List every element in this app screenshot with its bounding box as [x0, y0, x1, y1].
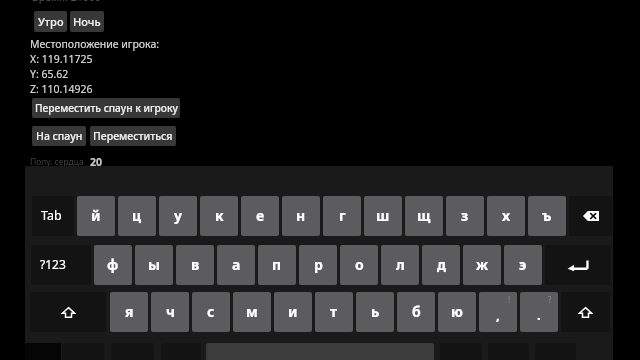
button[interactable]: э — [504, 245, 542, 285]
staticText: х — [502, 206, 511, 225]
staticText: Местоположение игрока: — [30, 37, 160, 51]
button[interactable]: ж — [463, 245, 501, 285]
button[interactable]: Shift — [561, 292, 610, 332]
button[interactable]: Ночь — [70, 11, 104, 32]
button[interactable]: с — [192, 292, 230, 332]
button[interactable]: ?123 — [31, 245, 91, 285]
staticText: о — [355, 255, 364, 274]
staticText: е — [256, 206, 265, 225]
button[interactable]: ы — [135, 245, 173, 285]
staticText: ы — [148, 255, 160, 274]
button[interactable]: Tab — [32, 196, 74, 236]
staticText: а — [232, 255, 241, 274]
staticText: я — [125, 302, 134, 321]
button[interactable]: й — [77, 196, 115, 236]
staticText: ?123 — [40, 256, 66, 272]
button[interactable]: Переместиться — [90, 126, 176, 146]
staticText: Переместить спаун к игроку — [35, 101, 178, 115]
staticText: Ночь — [73, 14, 101, 29]
button[interactable]: а — [217, 245, 255, 285]
staticText: ф — [107, 255, 119, 274]
button[interactable]: к — [200, 196, 238, 236]
staticText: , — [496, 306, 500, 324]
staticText: ч — [166, 302, 175, 321]
staticText: б — [412, 302, 421, 321]
staticText: р — [314, 255, 323, 274]
staticText: у — [174, 206, 182, 225]
staticText: ж — [476, 255, 489, 274]
staticText: г — [339, 206, 346, 225]
button[interactable]: н — [282, 196, 320, 236]
button[interactable]: х — [487, 196, 525, 236]
button[interactable]: р — [299, 245, 337, 285]
staticText: д — [437, 255, 446, 274]
button[interactable]: Переместить спаун к игроку — [32, 98, 180, 118]
button[interactable]: ъ — [528, 196, 566, 236]
button[interactable]: е — [241, 196, 279, 236]
staticText: й — [91, 206, 101, 225]
button[interactable]: т — [315, 292, 353, 332]
button[interactable]: у — [159, 196, 197, 236]
button[interactable]: ? — [520, 292, 558, 332]
button[interactable]: в — [176, 245, 214, 285]
staticText: Y: 65.62 — [30, 67, 69, 81]
button[interactable]: Backspace — [569, 196, 612, 236]
staticText: На спаун — [36, 129, 83, 143]
button[interactable]: ф — [94, 245, 132, 285]
button[interactable]: б — [397, 292, 435, 332]
button[interactable]: Время: 21000 — [32, 0, 101, 4]
button[interactable]: ! — [479, 292, 517, 332]
button[interactable]: о — [340, 245, 378, 285]
button[interactable]: ю — [438, 292, 476, 332]
staticText: с — [207, 302, 215, 321]
staticText: . — [537, 306, 541, 324]
staticText: ъ — [542, 206, 552, 225]
button[interactable]: д — [422, 245, 460, 285]
staticText: в — [191, 255, 200, 274]
button[interactable]: з — [446, 196, 484, 236]
button[interactable]: л — [381, 245, 419, 285]
staticText: ь — [371, 302, 380, 321]
button[interactable]: ц — [118, 196, 156, 236]
staticText: т — [330, 302, 338, 321]
button[interactable]: щ — [405, 196, 443, 236]
staticText: X: 119.11725 — [30, 52, 93, 66]
button[interactable]: ш — [364, 196, 402, 236]
button[interactable]: п — [258, 245, 296, 285]
staticText: л — [396, 255, 405, 274]
button[interactable]: г — [323, 196, 361, 236]
staticText: э — [519, 255, 527, 274]
staticText: Полу. сердца — [30, 156, 84, 168]
button[interactable]: и — [274, 292, 312, 332]
button[interactable]: На спаун — [32, 126, 86, 146]
button[interactable]: м — [233, 292, 271, 332]
staticText: п — [272, 255, 282, 274]
button[interactable]: ь — [356, 292, 394, 332]
staticText: м — [246, 302, 258, 321]
staticText: ! — [508, 294, 511, 305]
staticText: ? — [548, 294, 552, 305]
staticText: к — [215, 206, 224, 225]
staticText: щ — [417, 206, 431, 225]
button[interactable]: Утро — [34, 11, 67, 32]
staticText: Переместиться — [93, 129, 173, 143]
staticText: ш — [376, 206, 390, 225]
button[interactable]: ч — [151, 292, 189, 332]
staticText: 20 — [90, 155, 103, 169]
button[interactable]: я — [110, 292, 148, 332]
staticText: Время: 21000 — [32, 0, 101, 4]
button[interactable]: Enter — [545, 245, 611, 285]
staticText: з — [461, 206, 469, 225]
staticText: н — [296, 206, 306, 225]
staticText: Tab — [41, 207, 62, 224]
button[interactable]: Shift — [30, 292, 106, 332]
staticText: ю — [451, 302, 463, 321]
staticText: Утро — [38, 14, 64, 29]
